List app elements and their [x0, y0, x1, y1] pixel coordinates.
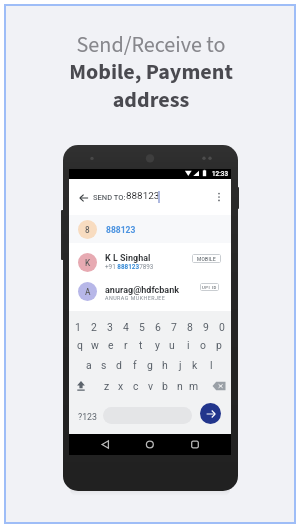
staticText: 2: [91, 321, 97, 333]
button[interactable]: l: [204, 358, 218, 372]
staticText: b: [162, 380, 168, 392]
button[interactable]: y: [150, 338, 164, 352]
button[interactable]: a: [82, 358, 96, 372]
button[interactable]: t: [134, 338, 148, 352]
staticText: 6: [155, 321, 161, 333]
button[interactable]: h: [158, 358, 172, 372]
button[interactable]: g: [143, 358, 157, 372]
button[interactable]: Recent apps: [184, 434, 205, 455]
staticText: 888123: [126, 190, 160, 202]
button[interactable]: 6: [151, 320, 165, 334]
staticText: u: [169, 339, 175, 351]
button[interactable]: d: [112, 358, 126, 372]
button[interactable]: 5: [135, 320, 149, 334]
button[interactable]: 2: [87, 320, 101, 334]
button[interactable]: s: [97, 358, 111, 372]
staticText: r: [124, 339, 128, 351]
button[interactable]: 8: [183, 320, 197, 334]
staticText: K: [85, 258, 91, 268]
button[interactable]: m: [187, 379, 201, 393]
staticText: d: [116, 359, 122, 371]
button[interactable]: 3: [103, 320, 117, 334]
staticText: 8: [187, 321, 193, 333]
staticText: h: [162, 359, 168, 371]
button[interactable]: Home: [140, 434, 161, 455]
button[interactable]: More options: [213, 189, 225, 205]
staticText: s: [101, 359, 107, 371]
staticText: x: [118, 380, 124, 392]
staticText: 4: [123, 321, 129, 333]
button[interactable]: ?123: [73, 409, 101, 425]
button[interactable]: UPI ID: [200, 283, 219, 291]
button[interactable]: MOBILE: [192, 254, 221, 263]
staticText: q: [77, 339, 83, 351]
staticText: v: [148, 380, 154, 392]
button[interactable]: o: [196, 338, 210, 352]
staticText: 12:33: [212, 170, 228, 177]
staticText: z: [104, 380, 110, 392]
button[interactable]: 0: [215, 320, 229, 334]
staticText: y: [155, 339, 160, 351]
staticText: 1: [75, 321, 81, 333]
staticText: 5: [139, 321, 145, 333]
staticText: w: [91, 339, 99, 351]
button[interactable]: n: [173, 379, 187, 393]
staticText: 7: [171, 321, 177, 333]
staticText: g: [147, 359, 153, 371]
staticText: K L Singhal: [105, 253, 151, 264]
staticText: Send/Receive to: [1, 29, 300, 60]
button[interactable]: [69, 215, 231, 243]
button[interactable]: q: [73, 338, 87, 352]
staticText: 3: [107, 321, 113, 333]
staticText: t: [139, 339, 143, 351]
staticText: k: [192, 359, 198, 371]
button[interactable]: [69, 215, 231, 243]
staticText: e: [108, 339, 114, 351]
staticText: c: [133, 380, 139, 392]
button[interactable]: z: [100, 379, 114, 393]
button[interactable]: [69, 243, 231, 277]
staticText: ANURAG MUKHERJEE: [105, 295, 166, 301]
staticText: +91 8881237893: [105, 263, 154, 270]
button[interactable]: p: [212, 338, 226, 352]
button[interactable]: b: [158, 379, 172, 393]
button[interactable]: 1: [71, 320, 85, 334]
staticText: 9: [203, 321, 209, 333]
button[interactable]: r: [119, 338, 133, 352]
button[interactable]: 9: [199, 320, 213, 334]
button[interactable]: Back: [76, 190, 92, 206]
staticText: 888123: [106, 225, 136, 235]
button[interactable]: w: [88, 338, 102, 352]
button[interactable]: Shift: [73, 378, 89, 394]
staticText: address: [1, 84, 300, 115]
staticText: n: [177, 380, 183, 392]
button[interactable]: v: [144, 379, 158, 393]
button[interactable]: k: [188, 358, 202, 372]
button[interactable]: e: [104, 338, 118, 352]
staticText: 0: [219, 321, 225, 333]
staticText: anurag@hdfcbank: [105, 285, 180, 296]
staticText: 8: [85, 225, 90, 235]
button[interactable]: x: [114, 379, 128, 393]
button[interactable]: u: [165, 338, 179, 352]
staticText: l: [210, 359, 213, 371]
button[interactable]: j: [173, 358, 187, 372]
staticText: a: [86, 359, 92, 371]
staticText: f: [133, 359, 137, 371]
button[interactable]: i: [181, 338, 195, 352]
button[interactable]: 7: [167, 320, 181, 334]
staticText: A: [85, 287, 91, 297]
button[interactable]: [69, 277, 231, 306]
staticText: m: [189, 380, 199, 392]
button[interactable]: f: [128, 358, 142, 372]
staticText: Mobile, Payment: [1, 56, 300, 87]
staticText: SEND TO:: [93, 193, 126, 202]
button[interactable]: Backspace: [211, 378, 227, 394]
button[interactable]: Back: [94, 434, 115, 455]
button[interactable]: c: [129, 379, 143, 393]
button[interactable]: Send: [200, 403, 221, 424]
staticText: i: [187, 339, 190, 351]
staticText: UPI ID: [202, 285, 217, 290]
button[interactable]: 4: [119, 320, 133, 334]
